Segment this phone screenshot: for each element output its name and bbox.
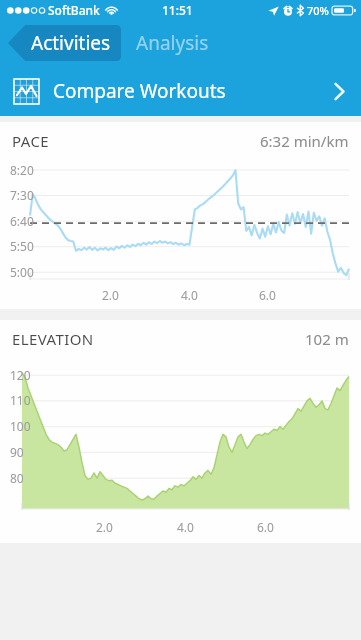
staticText: Activities — [31, 30, 111, 56]
other: Compare workouts chart — [14, 79, 39, 104]
staticText: SoftBank — [48, 2, 100, 18]
staticText: 7:30 — [10, 187, 34, 203]
staticText: 80 — [10, 470, 24, 486]
staticText: 5:50 — [10, 238, 34, 254]
staticText: 8:20 — [10, 162, 34, 178]
staticText: Compare Workouts — [53, 78, 226, 104]
staticText: 6.0 — [259, 287, 276, 303]
staticText: Analysis — [136, 30, 209, 56]
staticText: 6.0 — [257, 519, 274, 535]
button[interactable]: Compare workouts chart — [0, 66, 361, 116]
staticText: 4.0 — [177, 519, 194, 535]
staticText: ELEVATION — [12, 329, 94, 349]
staticText: 11:51 — [162, 2, 193, 18]
staticText: 110 — [10, 392, 31, 408]
button[interactable]: Activities — [8, 25, 121, 61]
staticText: 6:32 min/km — [260, 131, 349, 151]
staticText: 90 — [10, 444, 24, 460]
staticText: 70% — [307, 3, 329, 18]
staticText: 6:40 — [10, 213, 34, 229]
staticText: 100 — [10, 418, 31, 434]
staticText: 102 m — [305, 329, 349, 349]
staticText: 5:00 — [10, 264, 34, 280]
staticText: 2.0 — [102, 287, 119, 303]
staticText: 4.0 — [181, 287, 198, 303]
staticText: 120 — [10, 367, 31, 383]
staticText: 2.0 — [96, 519, 113, 535]
staticText: PACE — [12, 131, 50, 151]
button[interactable]: Analysis — [136, 25, 234, 61]
